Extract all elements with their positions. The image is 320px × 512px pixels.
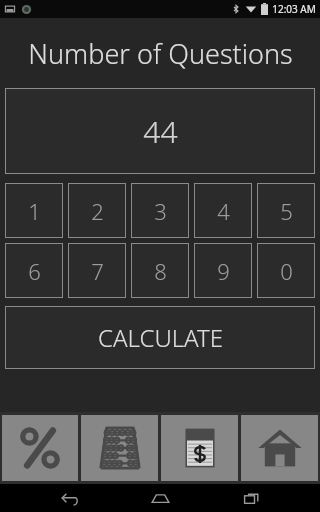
button[interactable]: Home (138, 485, 182, 511)
button[interactable]: 5 (257, 183, 315, 238)
staticText: 9 (217, 256, 230, 286)
staticText: 6 (28, 256, 41, 286)
button[interactable]: Home (241, 415, 318, 481)
staticText: 8 (154, 256, 167, 286)
staticText: 1 (28, 196, 41, 226)
button[interactable]: 4 (194, 183, 252, 238)
staticText: 5 (280, 196, 293, 226)
staticText: 44 (143, 111, 178, 152)
button[interactable]: 9 (194, 243, 252, 298)
button[interactable]: Abacus (81, 415, 158, 481)
button[interactable]: 1 (5, 183, 63, 238)
button[interactable]: Percent (2, 415, 78, 481)
button[interactable]: 8 (131, 243, 189, 298)
button[interactable]: Back (47, 485, 91, 511)
button[interactable]: 0 (257, 243, 315, 298)
staticText: 12:03 AM (272, 2, 316, 16)
staticText: 4 (217, 196, 230, 226)
button[interactable]: 7 (68, 243, 126, 298)
button[interactable]: 3 (131, 183, 189, 238)
staticText: 2 (91, 196, 104, 226)
button[interactable]: Receipt (161, 415, 238, 481)
staticText: 3 (154, 196, 167, 226)
staticText: 0 (280, 256, 293, 286)
button[interactable]: Recents (229, 485, 273, 511)
staticText: 7 (91, 256, 104, 286)
staticText: Number of Questions (28, 35, 293, 72)
button[interactable]: 44 (5, 88, 315, 174)
button[interactable]: CALCULATE (5, 306, 315, 369)
staticText: CALCULATE (98, 321, 223, 354)
button[interactable]: 6 (5, 243, 63, 298)
button[interactable]: 2 (68, 183, 126, 238)
